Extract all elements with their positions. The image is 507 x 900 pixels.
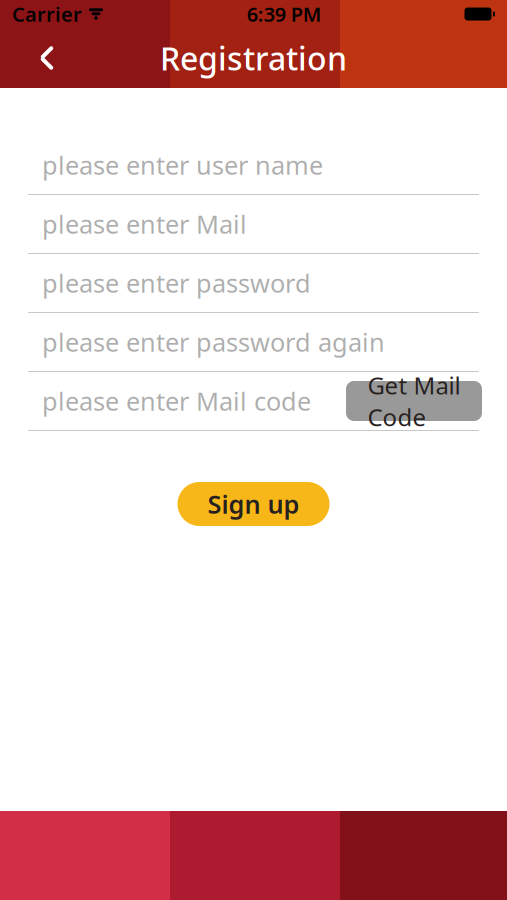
button[interactable]: Back <box>20 31 74 85</box>
staticText: Registration <box>160 37 347 79</box>
staticText: Get Mail Code <box>367 369 460 433</box>
staticText: Carrier <box>12 1 82 27</box>
staticText: please enter password <box>42 266 311 300</box>
staticText: please enter password again <box>42 325 385 359</box>
button[interactable]: Get Mail Code <box>346 381 482 421</box>
staticText: please enter user name <box>42 148 323 182</box>
staticText: Sign up <box>207 487 299 521</box>
staticText: please enter Mail code <box>42 384 311 418</box>
button[interactable]: Sign up <box>177 482 329 526</box>
staticText: please enter Mail <box>42 207 247 241</box>
staticText: 6:39 PM <box>247 1 322 27</box>
